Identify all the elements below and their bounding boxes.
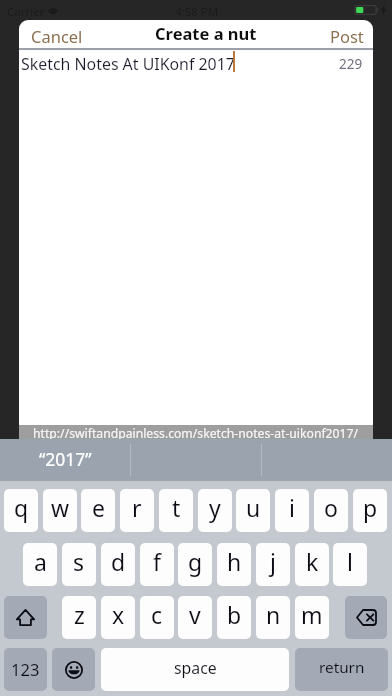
staticText: p	[363, 492, 378, 523]
staticText: o	[324, 492, 338, 523]
staticText: Carrier	[7, 4, 45, 20]
staticText: l	[347, 546, 353, 577]
staticText: n	[266, 599, 281, 630]
button[interactable]: n	[256, 596, 290, 639]
staticText: b	[227, 599, 242, 630]
button[interactable]: d	[101, 543, 135, 586]
staticText: r	[132, 492, 142, 523]
staticText: Sketch Notes At UIKonf 2017	[21, 53, 235, 75]
staticText: u	[246, 492, 261, 523]
button[interactable]: Post	[320, 20, 373, 48]
button[interactable]: p	[353, 489, 387, 532]
button[interactable]: Backspace	[345, 596, 387, 639]
button[interactable]: x	[101, 596, 135, 639]
button[interactable]: b	[217, 596, 251, 639]
staticText: return	[319, 657, 365, 678]
button[interactable]: q	[4, 489, 38, 532]
staticText: m	[301, 599, 323, 630]
button[interactable]: “2017”	[0, 439, 130, 481]
staticText: q	[14, 492, 29, 523]
button[interactable]: Emoji	[52, 648, 95, 691]
button[interactable]: f	[140, 543, 174, 586]
staticText: t	[172, 492, 181, 523]
staticText: i	[289, 492, 295, 523]
button[interactable]: a	[23, 543, 57, 586]
staticText: http://swiftandpainless.com/sketch-notes…	[33, 425, 359, 439]
button[interactable]: o	[314, 489, 348, 532]
button[interactable]: g	[178, 543, 212, 586]
button[interactable]: j	[256, 543, 290, 586]
staticText: 123	[11, 658, 40, 680]
button[interactable]: s	[62, 543, 96, 586]
button[interactable]: r	[120, 489, 154, 532]
staticText: g	[188, 546, 203, 577]
button[interactable]: v	[178, 596, 212, 639]
button[interactable]: z	[62, 596, 96, 639]
button[interactable]: t	[159, 489, 193, 532]
staticText: Cancel	[31, 25, 83, 43]
staticText: e	[92, 492, 105, 523]
button[interactable]: k	[295, 543, 329, 586]
staticText: f	[153, 546, 161, 577]
staticText: 4:58 PM	[175, 4, 219, 20]
staticText: d	[111, 546, 126, 577]
staticText: space	[174, 657, 217, 679]
button[interactable]: e	[81, 489, 115, 532]
button[interactable]: Shift	[4, 596, 47, 639]
staticText: k	[306, 546, 319, 577]
staticText: “2017”	[39, 447, 92, 471]
button[interactable]: u	[236, 489, 270, 532]
button[interactable]: return	[295, 648, 388, 691]
staticText: v	[189, 599, 201, 630]
staticText: w	[51, 492, 70, 523]
button[interactable]: m	[295, 596, 329, 639]
staticText: z	[74, 599, 85, 630]
button[interactable]: space	[101, 648, 289, 691]
staticText: h	[227, 546, 242, 577]
button[interactable]: Cancel	[19, 20, 93, 48]
staticText: Create a nut	[155, 22, 257, 44]
button[interactable]: l	[333, 543, 367, 586]
staticText: y	[209, 492, 221, 523]
button[interactable]: w	[43, 489, 77, 532]
button[interactable]: y	[198, 489, 232, 532]
staticText: j	[270, 546, 276, 577]
staticText: x	[112, 599, 125, 630]
staticText: 229	[339, 55, 363, 73]
staticText: a	[34, 546, 47, 577]
button[interactable]: http://swiftandpainless.com/sketch-notes…	[19, 425, 373, 439]
staticText: Post	[330, 25, 364, 43]
button[interactable]: h	[217, 543, 251, 586]
button[interactable]: Numbers	[4, 648, 47, 691]
staticText: s	[73, 546, 85, 577]
button[interactable]: i	[275, 489, 309, 532]
staticText: c	[151, 599, 163, 630]
button[interactable]: c	[140, 596, 174, 639]
